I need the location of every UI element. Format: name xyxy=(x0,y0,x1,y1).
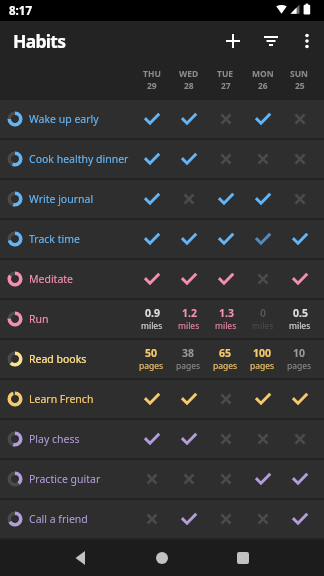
button[interactable] xyxy=(207,460,244,498)
button[interactable]: Track time xyxy=(0,220,324,258)
button[interactable] xyxy=(281,180,318,218)
staticText: pages xyxy=(287,360,312,372)
button[interactable]: 50 xyxy=(133,340,170,378)
button[interactable]: 0 xyxy=(244,300,281,338)
staticText: 28 xyxy=(184,80,194,92)
button[interactable] xyxy=(170,180,207,218)
button[interactable] xyxy=(207,140,244,178)
button[interactable] xyxy=(281,260,318,298)
button[interactable] xyxy=(207,180,244,218)
staticText: TUE xyxy=(217,68,234,80)
button[interactable] xyxy=(214,22,252,60)
button[interactable] xyxy=(244,180,281,218)
staticText: miles xyxy=(289,320,311,332)
staticText: 100 xyxy=(253,346,272,360)
button[interactable]: 0.9 xyxy=(133,300,170,338)
button[interactable]: Call a friend xyxy=(0,500,324,538)
button[interactable] xyxy=(244,380,281,418)
staticText: Run xyxy=(29,312,49,326)
button[interactable] xyxy=(281,500,318,538)
button[interactable] xyxy=(281,460,318,498)
button[interactable] xyxy=(170,100,207,138)
button[interactable] xyxy=(170,460,207,498)
button[interactable] xyxy=(223,540,263,576)
button[interactable] xyxy=(133,420,170,458)
button[interactable]: Read books xyxy=(0,340,324,378)
button[interactable]: Run xyxy=(0,300,324,338)
staticText: THU xyxy=(143,68,161,80)
button[interactable] xyxy=(170,500,207,538)
staticText: 10 xyxy=(293,346,306,360)
button[interactable] xyxy=(281,140,318,178)
staticText: Meditate xyxy=(29,272,74,286)
button[interactable]: 100 xyxy=(244,340,281,378)
button[interactable] xyxy=(244,220,281,258)
button[interactable] xyxy=(133,180,170,218)
staticText: 26 xyxy=(258,80,268,92)
button[interactable]: 10 xyxy=(281,340,318,378)
staticText: miles xyxy=(178,320,200,332)
button[interactable] xyxy=(207,420,244,458)
button[interactable]: 38 xyxy=(170,340,207,378)
button[interactable] xyxy=(170,380,207,418)
staticText: pages xyxy=(213,360,238,372)
button[interactable] xyxy=(142,540,182,576)
button[interactable] xyxy=(244,460,281,498)
staticText: Write journal xyxy=(29,192,94,206)
button[interactable] xyxy=(244,260,281,298)
button[interactable] xyxy=(281,220,318,258)
button[interactable]: Learn French xyxy=(0,380,324,418)
button[interactable] xyxy=(133,380,170,418)
staticText: Play chess xyxy=(29,432,80,446)
button[interactable] xyxy=(170,420,207,458)
button[interactable] xyxy=(244,500,281,538)
button[interactable] xyxy=(170,220,207,258)
staticText: Habits xyxy=(13,29,66,53)
button[interactable] xyxy=(207,500,244,538)
button[interactable] xyxy=(281,380,318,418)
staticText: 0.9 xyxy=(145,306,160,320)
button[interactable] xyxy=(170,260,207,298)
button[interactable] xyxy=(290,24,324,58)
button[interactable] xyxy=(133,140,170,178)
button[interactable]: Cook healthy dinner xyxy=(0,140,324,178)
button[interactable] xyxy=(133,460,170,498)
staticText: 25 xyxy=(295,80,305,92)
staticText: 50 xyxy=(145,346,158,360)
button[interactable] xyxy=(133,260,170,298)
button[interactable] xyxy=(244,100,281,138)
button[interactable] xyxy=(281,100,318,138)
button[interactable] xyxy=(133,220,170,258)
button[interactable]: 65 xyxy=(207,340,244,378)
staticText: pages xyxy=(250,360,275,372)
staticText: miles xyxy=(215,320,237,332)
staticText: 27 xyxy=(221,80,231,92)
staticText: Track time xyxy=(29,232,80,246)
button[interactable] xyxy=(61,540,101,576)
button[interactable] xyxy=(244,420,281,458)
button[interactable]: 1.3 xyxy=(207,300,244,338)
staticText: pages xyxy=(139,360,164,372)
button[interactable] xyxy=(207,100,244,138)
staticText: 8:17 xyxy=(9,3,32,19)
button[interactable]: Write journal xyxy=(0,180,324,218)
staticText: Wake up early xyxy=(29,112,99,126)
button[interactable] xyxy=(170,140,207,178)
button[interactable]: Practice guitar xyxy=(0,460,324,498)
button[interactable] xyxy=(281,420,318,458)
staticText: Learn French xyxy=(29,392,94,406)
button[interactable] xyxy=(133,500,170,538)
button[interactable]: Play chess xyxy=(0,420,324,458)
staticText: 0.5 xyxy=(293,306,308,320)
button[interactable]: 0.5 xyxy=(281,300,318,338)
staticText: miles xyxy=(141,320,163,332)
button[interactable] xyxy=(244,140,281,178)
button[interactable]: 1.2 xyxy=(170,300,207,338)
button[interactable]: Wake up early xyxy=(0,100,324,138)
button[interactable]: Meditate xyxy=(0,260,324,298)
button[interactable] xyxy=(133,100,170,138)
button[interactable] xyxy=(207,220,244,258)
button[interactable] xyxy=(252,22,290,60)
button[interactable] xyxy=(207,260,244,298)
button[interactable] xyxy=(207,380,244,418)
